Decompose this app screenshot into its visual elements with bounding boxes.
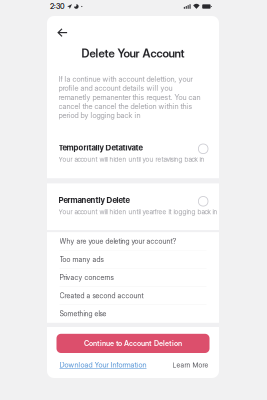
button[interactable]: Something else xyxy=(47,305,219,322)
staticText: Your account will hiden until yearfree i… xyxy=(58,208,217,216)
staticText: If la continue with account delettion, y… xyxy=(59,75,201,120)
staticText: Permanently Delete xyxy=(58,195,129,205)
button[interactable]: Created a second account xyxy=(47,287,219,304)
staticText: Continue to Account Deletion xyxy=(84,339,182,348)
staticText: Your account will hiden until you retavi… xyxy=(58,155,204,163)
button[interactable]: Why are youe deleting your account? xyxy=(47,232,219,250)
button[interactable]: Too many ads xyxy=(47,251,219,268)
staticText: Why are youe deleting your account? xyxy=(59,237,176,245)
staticText: 2:30 xyxy=(50,2,65,11)
button[interactable]: Download Your Information xyxy=(59,360,146,369)
button[interactable]: Temporitally Detativate xyxy=(47,133,219,178)
button[interactable]: Permanently Delete xyxy=(47,186,219,230)
button[interactable]: Privacy concerns xyxy=(47,269,219,286)
staticText: Delete Your Account xyxy=(81,46,184,60)
staticText: Privacy concerns xyxy=(59,273,113,282)
staticText: Something else xyxy=(59,309,106,318)
staticText: Download Your Information xyxy=(59,360,146,369)
button[interactable]: Continue to Account Deletion xyxy=(56,334,209,353)
staticText: Temporitally Detativate xyxy=(58,143,142,152)
button[interactable]: Learn More xyxy=(172,361,208,369)
staticText: Learn More xyxy=(172,361,208,369)
staticText: Too many ads xyxy=(59,255,103,264)
staticText: Created a second account xyxy=(59,291,143,300)
button[interactable]: Back xyxy=(54,25,70,40)
